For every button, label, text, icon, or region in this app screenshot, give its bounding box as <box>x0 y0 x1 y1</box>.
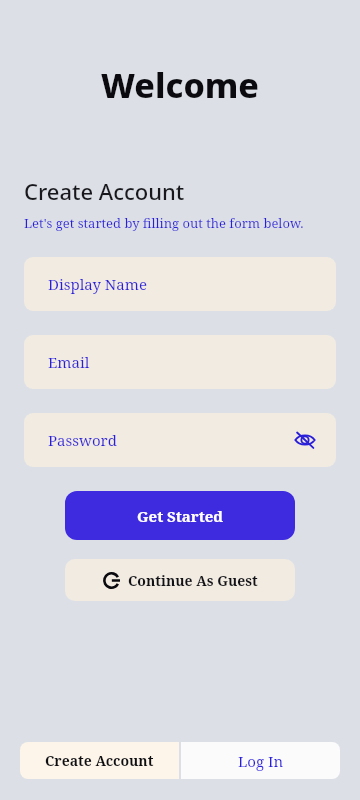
staticText: Email <box>48 352 90 372</box>
button[interactable]: Email <box>24 335 336 389</box>
button[interactable]: Continue As Guest <box>65 559 295 601</box>
staticText: Create Account <box>45 751 154 770</box>
button[interactable]: Password <box>24 413 336 467</box>
staticText: Let's get started by filling out the for… <box>24 214 304 232</box>
button[interactable]: Display Name <box>24 257 336 311</box>
button[interactable]: Get Started <box>65 491 295 540</box>
staticText: Welcome <box>101 62 259 108</box>
staticText: Create Account <box>24 176 185 206</box>
button[interactable]: Show password <box>292 427 318 453</box>
staticText: Get Started <box>137 506 224 526</box>
button[interactable]: Create Account <box>20 742 179 779</box>
staticText: Password <box>48 430 117 450</box>
staticText: Display Name <box>48 274 147 294</box>
staticText: Log In <box>238 751 284 771</box>
staticText: Continue As Guest <box>128 571 258 590</box>
button[interactable]: Log In <box>181 742 340 779</box>
